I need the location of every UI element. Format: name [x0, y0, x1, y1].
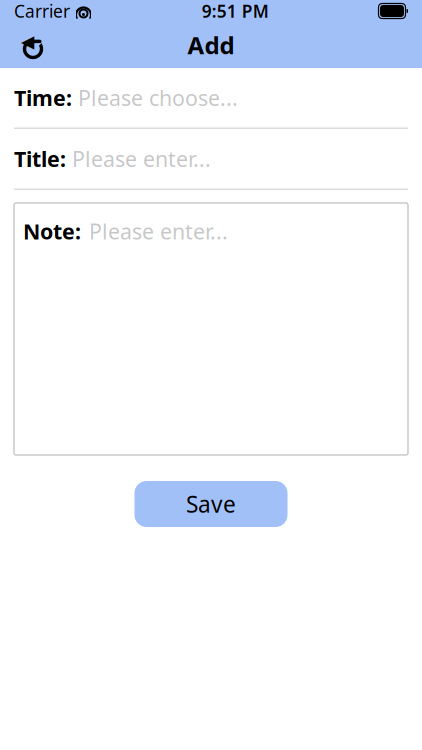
staticText: Please enter...	[72, 145, 211, 173]
staticText: ◀	[21, 32, 34, 51]
staticText: Note:	[23, 217, 81, 245]
staticText: Time:	[14, 84, 72, 112]
staticText: Please enter...	[89, 217, 228, 245]
staticText: Add	[187, 29, 234, 61]
staticText: Carrier	[14, 0, 70, 22]
staticText: 9:51 PM	[202, 0, 269, 22]
button[interactable]: Time:	[0, 68, 422, 129]
staticText: Please choose...	[78, 84, 238, 112]
button[interactable]: Save	[134, 481, 287, 527]
staticText: Save	[186, 489, 236, 519]
button[interactable]: Title:	[0, 129, 422, 190]
staticText: Title:	[14, 145, 66, 173]
button[interactable]: Note:	[0, 203, 422, 455]
button[interactable]: Back	[11, 23, 55, 67]
